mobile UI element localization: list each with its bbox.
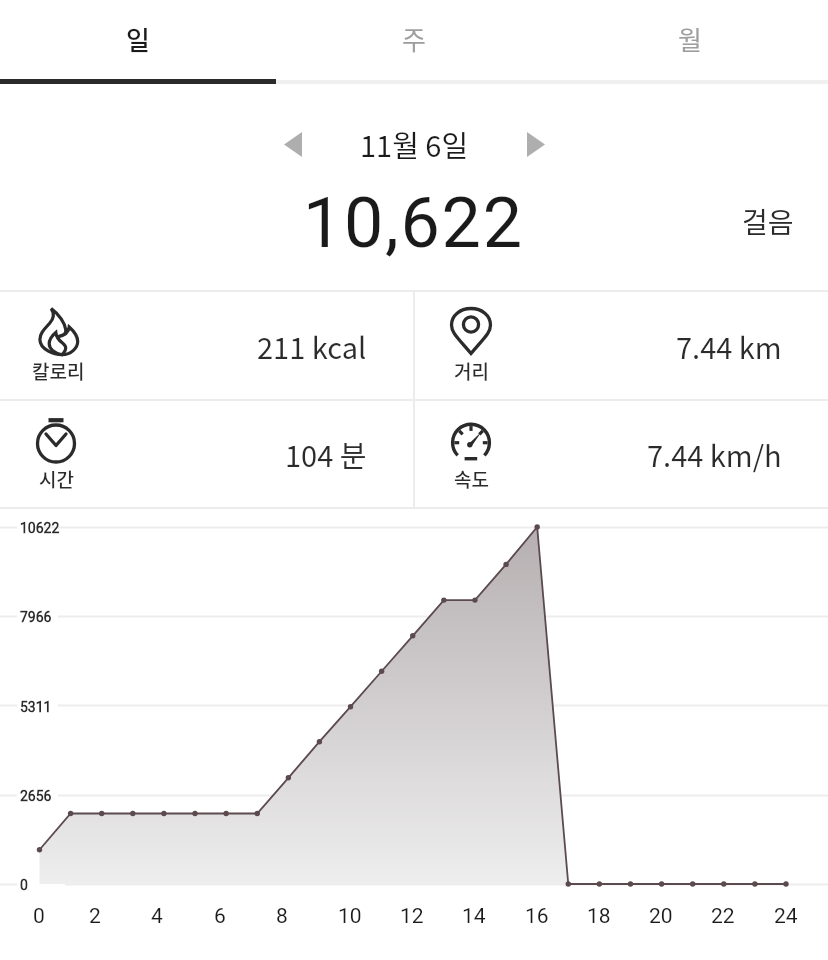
staticText: 걸음	[742, 201, 794, 242]
staticText: 7.44 km/h	[647, 433, 782, 475]
staticText: 5311	[20, 699, 52, 715]
staticText: 0	[20, 877, 28, 893]
button[interactable]: Previous day	[265, 116, 321, 172]
staticText: 2656	[20, 788, 52, 804]
staticText: 24	[774, 904, 798, 929]
staticText: 8	[276, 904, 288, 929]
staticText: 104 분	[285, 433, 367, 475]
staticText: 16	[525, 904, 549, 929]
button[interactable]: 칼로리	[0, 292, 413, 399]
staticText: 14	[462, 904, 486, 929]
staticText: 주	[402, 20, 426, 58]
button[interactable]: 주	[276, 0, 552, 79]
staticText: 0	[33, 904, 45, 929]
staticText: 시간	[39, 465, 74, 493]
staticText: 22	[711, 904, 735, 929]
staticText: 7.44 km	[676, 325, 782, 367]
staticText: 10	[338, 904, 362, 929]
staticText: 2	[89, 904, 101, 929]
staticText: 211 kcal	[257, 325, 367, 367]
staticText: 10622	[20, 520, 60, 536]
button[interactable]: 일	[0, 0, 276, 79]
staticText: 11월 6일	[360, 123, 469, 165]
staticText: 속도	[454, 465, 489, 493]
staticText: 6	[214, 904, 226, 929]
staticText: 10,622	[303, 182, 524, 264]
staticText: 4	[151, 904, 163, 929]
button[interactable]: 시간	[0, 401, 413, 507]
button[interactable]: 속도	[415, 401, 828, 507]
staticText: 20	[649, 904, 673, 929]
staticText: 18	[587, 904, 611, 929]
button[interactable]: Next day	[508, 116, 564, 172]
staticText: 12	[400, 904, 424, 929]
button[interactable]: 거리	[415, 292, 828, 399]
staticText: 일	[126, 20, 150, 58]
staticText: 칼로리	[32, 357, 85, 385]
staticText: 거리	[454, 357, 489, 385]
staticText: 월	[678, 20, 702, 58]
button[interactable]: 월	[552, 0, 828, 79]
staticText: 7966	[20, 609, 52, 625]
